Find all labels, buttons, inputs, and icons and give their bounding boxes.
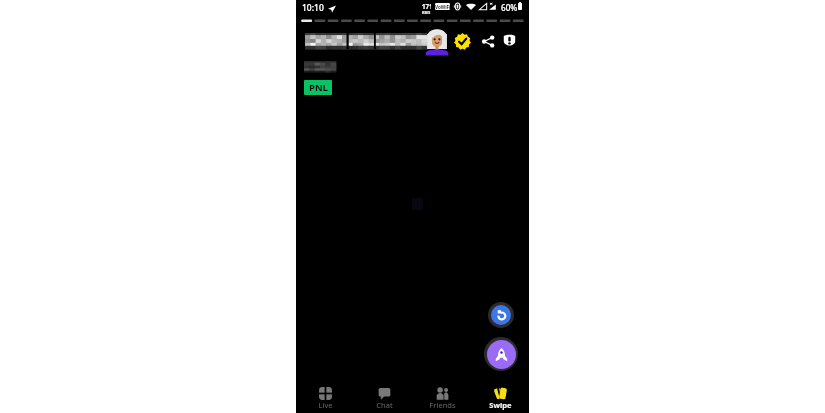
staticText: Swipe — [489, 400, 512, 410]
staticText: Friends — [429, 400, 456, 410]
button[interactable]: Swipe — [471, 381, 529, 413]
button[interactable]: Verified — [454, 33, 471, 50]
button[interactable]: Refresh — [488, 302, 514, 328]
button[interactable]: Report — [503, 34, 516, 47]
staticText: 10:10 — [302, 2, 324, 14]
button[interactable]: Live — [296, 381, 355, 413]
staticText: 60% — [501, 2, 518, 13]
staticText: PNL — [309, 81, 328, 94]
button[interactable]: Friends — [413, 381, 471, 413]
staticText: 171 — [422, 2, 431, 10]
button[interactable]: Boost — [484, 337, 518, 371]
staticText: VoWiFi — [435, 4, 450, 10]
button[interactable]: Share — [481, 35, 495, 48]
staticText: Chat — [376, 400, 393, 410]
button[interactable]: PNL — [304, 80, 332, 95]
button[interactable]: Chat — [355, 381, 413, 413]
staticText: KB/S — [422, 10, 431, 15]
staticText: Live — [318, 400, 333, 410]
